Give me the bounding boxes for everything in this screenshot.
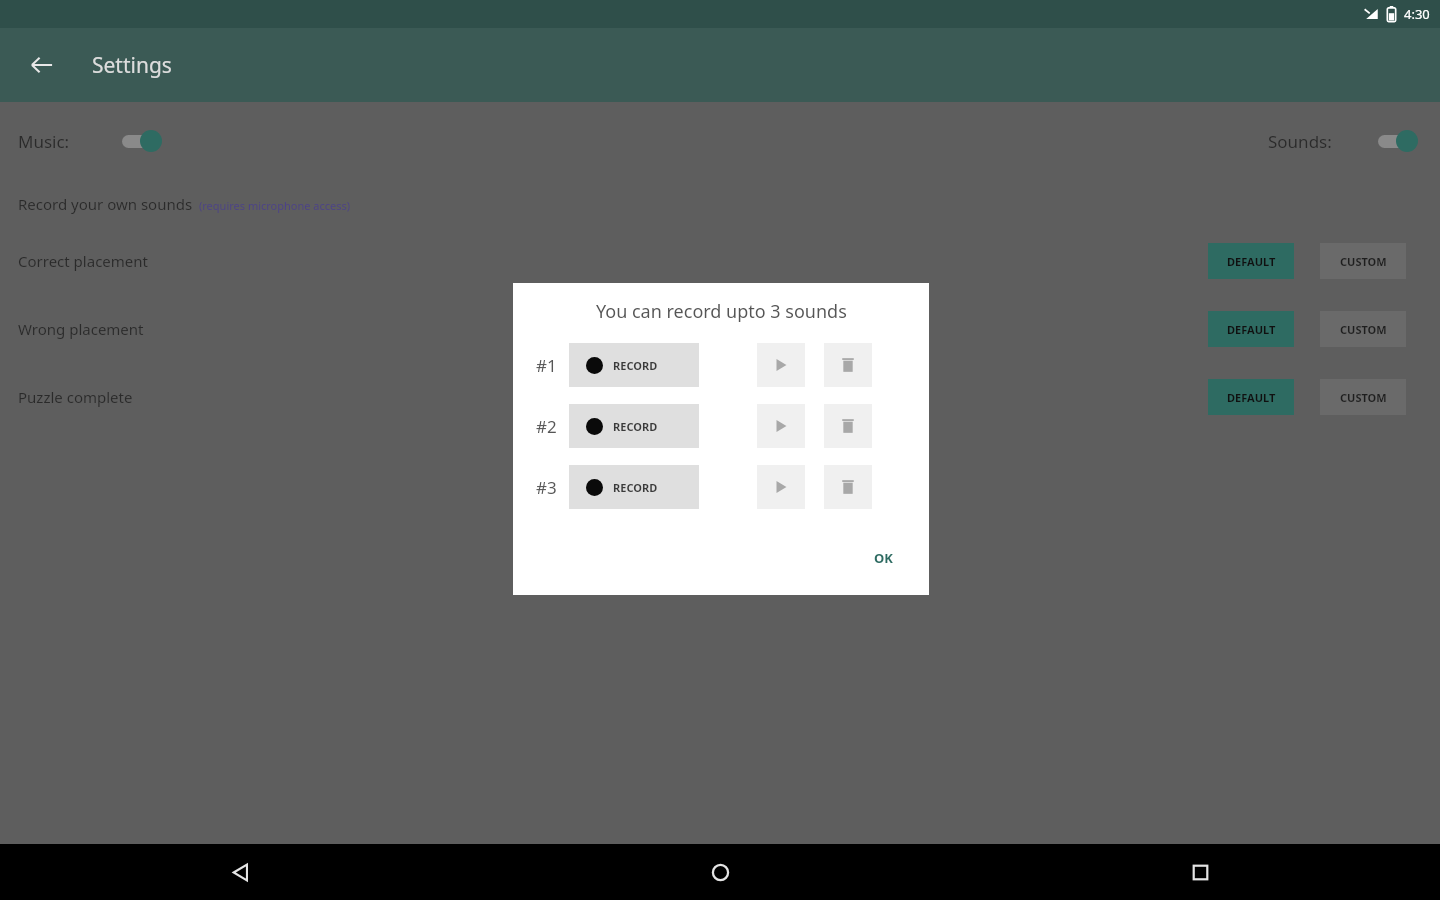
- button[interactable]: OK: [874, 549, 893, 567]
- staticText: Sounds:: [1268, 130, 1332, 153]
- button[interactable]: Play: [757, 465, 805, 509]
- button[interactable]: CUSTOM: [1320, 379, 1406, 415]
- button[interactable]: RECORD: [569, 343, 699, 387]
- button[interactable]: Play: [757, 404, 805, 448]
- button[interactable]: Play: [757, 343, 805, 387]
- button[interactable]: Toggle: [1376, 128, 1422, 154]
- button[interactable]: Delete: [824, 404, 872, 448]
- staticText: DEFAULT: [1227, 322, 1276, 337]
- staticText: Settings: [92, 51, 172, 80]
- button[interactable]: RECORD: [569, 465, 699, 509]
- staticText: DEFAULT: [1227, 390, 1276, 405]
- staticText: #1: [536, 354, 557, 377]
- button[interactable]: Back: [0, 844, 480, 900]
- button[interactable]: Delete: [824, 465, 872, 509]
- staticText: 4:30: [1404, 5, 1430, 23]
- staticText: OK: [874, 549, 893, 567]
- staticText: Wrong placement: [18, 319, 144, 339]
- staticText: Puzzle complete: [18, 387, 133, 407]
- staticText: DEFAULT: [1227, 254, 1276, 269]
- staticText: CUSTOM: [1340, 390, 1387, 405]
- button[interactable]: CUSTOM: [1320, 311, 1406, 347]
- button[interactable]: DEFAULT: [1208, 311, 1294, 347]
- staticText: Correct placement: [18, 251, 148, 271]
- button[interactable]: DEFAULT: [1208, 243, 1294, 279]
- staticText: CUSTOM: [1340, 254, 1387, 269]
- button[interactable]: Home: [480, 844, 960, 900]
- staticText: Music:: [18, 130, 70, 153]
- button[interactable]: Toggle: [120, 128, 166, 154]
- button[interactable]: Delete: [824, 343, 872, 387]
- staticText: CUSTOM: [1340, 322, 1387, 337]
- button[interactable]: RECORD: [569, 404, 699, 448]
- button[interactable]: CUSTOM: [1320, 243, 1406, 279]
- staticText: RECORD: [613, 419, 658, 434]
- button[interactable]: Back: [18, 41, 66, 89]
- button[interactable]: Record your own sounds: [18, 194, 1440, 214]
- staticText: #2: [536, 415, 557, 438]
- button[interactable]: DEFAULT: [1208, 379, 1294, 415]
- button[interactable]: Recent apps: [960, 844, 1440, 900]
- staticText: #3: [536, 476, 557, 499]
- staticText: (requires microphone access): [199, 198, 351, 213]
- staticText: You can record upto 3 sounds: [596, 299, 847, 324]
- staticText: RECORD: [613, 480, 658, 495]
- staticText: RECORD: [613, 358, 658, 373]
- staticText: Record your own sounds: [18, 194, 193, 214]
